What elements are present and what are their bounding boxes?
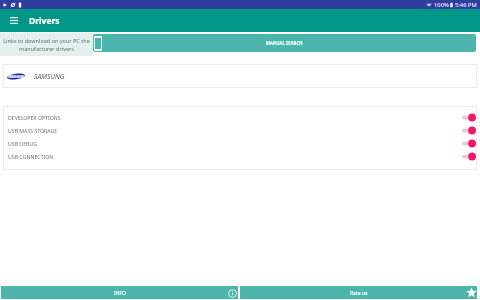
- button[interactable]: Toggle setting: [462, 151, 476, 162]
- staticText: INFO: [114, 290, 126, 297]
- staticText: 5:46 PM: [455, 1, 477, 9]
- staticText: 100%: [434, 1, 449, 9]
- staticText: USB DEBUG: [8, 140, 37, 147]
- button[interactable]: USB MASS STORAGE: [3, 124, 477, 137]
- button[interactable]: Samsung drivers: [3, 64, 477, 88]
- staticText: USB CONNECTION: [8, 153, 54, 160]
- staticText: DEVELOPER OPTIONS: [8, 114, 61, 121]
- button[interactable]: DEVELOPER OPTIONS: [3, 111, 477, 124]
- button[interactable]: INFO: [1, 286, 238, 299]
- staticText: USB MASS STORAGE: [8, 127, 58, 134]
- button[interactable]: MANUAL SEARCH: [93, 34, 476, 52]
- staticText: SAMSUNG: [34, 72, 65, 81]
- button[interactable]: Toggle setting: [462, 112, 476, 123]
- staticText: MANUAL SEARCH: [266, 40, 303, 46]
- staticText: Drivers: [29, 15, 60, 27]
- button[interactable]: USB DEBUG: [3, 137, 477, 150]
- button[interactable]: Toggle setting: [462, 125, 476, 136]
- button[interactable]: Rate us: [240, 286, 477, 299]
- button[interactable]: Open navigation menu: [7, 9, 20, 32]
- button[interactable]: Toggle setting: [462, 138, 476, 149]
- staticText: Rate us: [350, 290, 368, 297]
- staticText: SAMSUNG: [8, 75, 25, 79]
- button[interactable]: USB CONNECTION: [3, 150, 477, 163]
- staticText: Links to download on your PC the manufac…: [3, 37, 90, 53]
